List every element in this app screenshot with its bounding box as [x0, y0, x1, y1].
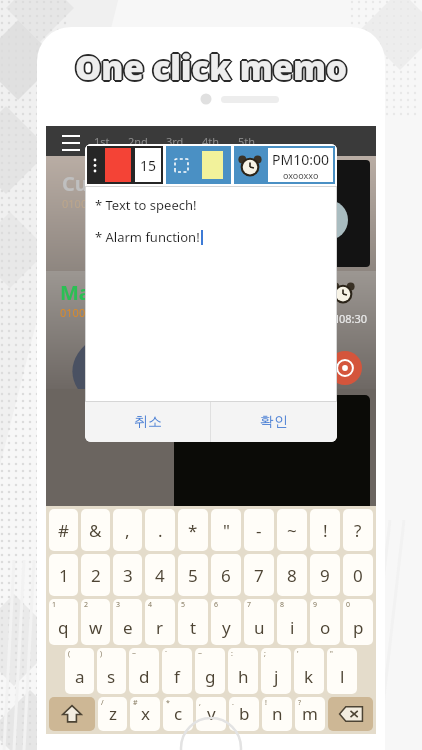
button[interactable]: #: [130, 697, 160, 731]
button[interactable]: #: [49, 509, 78, 551]
button[interactable]: 7: [244, 554, 274, 596]
button[interactable]: Alarm time: [234, 146, 335, 184]
staticText: ?: [354, 519, 362, 542]
button[interactable]: !: [262, 697, 292, 731]
staticText: 8: [287, 564, 297, 587]
staticText: .: [232, 698, 234, 708]
button[interactable]: Highlight color: [166, 146, 231, 184]
staticText: u: [254, 616, 265, 639]
button[interactable]: ;: [261, 648, 291, 694]
staticText: Recording sample.: [184, 405, 298, 423]
button[interactable]: 취소: [85, 402, 210, 442]
staticText: ,: [125, 519, 130, 542]
button[interactable]: 3: [113, 554, 142, 596]
button[interactable]: 9: [310, 599, 340, 645]
staticText: oxooxxo: [283, 169, 319, 181]
button[interactable]: 5: [178, 599, 208, 645]
button[interactable]: ?: [295, 697, 325, 731]
staticText: :: [231, 649, 233, 659]
button[interactable]: ~: [129, 648, 159, 694]
button[interactable]: 8: [277, 554, 307, 596]
button[interactable]: `: [162, 648, 192, 694]
button[interactable]: 2nd: [128, 134, 148, 149]
button[interactable]: 3: [113, 599, 142, 645]
staticText: * Text to speech!: [95, 196, 197, 214]
button[interactable]: ~: [277, 509, 307, 551]
staticText: 9: [320, 564, 330, 587]
button[interactable]: 3rd: [166, 134, 184, 149]
button[interactable]: 0: [343, 554, 373, 596]
staticText: ): [100, 649, 103, 659]
staticText: * Alarm function!: [95, 228, 200, 246]
button[interactable]: 2: [81, 599, 110, 645]
button[interactable]: 7: [244, 599, 274, 645]
button[interactable]: 2: [81, 554, 110, 596]
button[interactable]: -: [244, 509, 274, 551]
button[interactable]: 6: [211, 554, 241, 596]
button[interactable]: 6: [211, 599, 241, 645]
button[interactable]: .: [229, 697, 259, 731]
button[interactable]: ~: [195, 648, 225, 694]
staticText: ~: [287, 519, 297, 542]
button[interactable]: Backspace: [328, 697, 373, 731]
button[interactable]: /: [98, 697, 127, 731]
staticText: 6: [221, 564, 231, 587]
staticText: One click memo: [73, 45, 346, 90]
button[interactable]: 1st: [94, 134, 110, 149]
other: More options: [87, 146, 103, 184]
staticText: x: [141, 702, 150, 725]
staticText: v: [207, 702, 216, 725]
button[interactable]: 4: [145, 554, 175, 596]
button[interactable]: More options: [87, 146, 163, 184]
button[interactable]: :: [228, 648, 258, 694]
staticText: i: [290, 616, 295, 639]
button[interactable]: Pause: [308, 200, 348, 240]
staticText: 5: [181, 600, 186, 610]
button[interactable]: ,: [113, 509, 142, 551]
button[interactable]: 8: [277, 599, 307, 645]
button[interactable]: 확인: [211, 402, 337, 442]
button[interactable]: &: [81, 509, 110, 551]
button[interactable]: 5: [178, 554, 208, 596]
button[interactable]: ": [211, 509, 241, 551]
button[interactable]: 9: [310, 554, 340, 596]
button[interactable]: Shift: [49, 697, 95, 731]
button[interactable]: ): [97, 648, 126, 694]
staticText: ": [223, 519, 230, 542]
button[interactable]: ': [294, 648, 324, 694]
button[interactable]: 5th: [238, 134, 256, 149]
button[interactable]: Call: [328, 351, 362, 385]
staticText: 9: [313, 600, 318, 610]
button[interactable]: 4th: [202, 134, 220, 149]
button[interactable]: Menu: [58, 128, 84, 154]
staticText: 2nd: [128, 134, 148, 149]
staticText: 8: [280, 600, 285, 610]
button[interactable]: ": [327, 648, 357, 694]
staticText: 3: [116, 600, 121, 610]
button[interactable]: 1: [49, 599, 78, 645]
button[interactable]: !: [310, 509, 340, 551]
button[interactable]: (: [65, 648, 94, 694]
staticText: c: [174, 702, 183, 725]
staticText: 확인: [260, 413, 288, 431]
staticText: 3rd: [166, 134, 184, 149]
staticText: One click memo: [75, 43, 348, 88]
button[interactable]: *: [163, 697, 193, 731]
button[interactable]: ?: [343, 509, 373, 551]
staticText: o: [320, 616, 331, 639]
button[interactable]: 0: [343, 599, 373, 645]
staticText: PM10:00: [272, 150, 329, 169]
other: Shift: [61, 703, 83, 725]
button[interactable]: *: [178, 509, 208, 551]
button[interactable]: 1: [49, 554, 78, 596]
staticText: One click memo: [74, 44, 347, 89]
staticText: Man: [60, 279, 104, 306]
staticText: One click memo: [76, 44, 349, 89]
staticText: d.: [256, 166, 266, 181]
button[interactable]: ,: [196, 697, 226, 731]
staticText: b: [239, 702, 250, 725]
staticText: 15: [140, 156, 157, 175]
button[interactable]: .: [145, 509, 175, 551]
button[interactable]: 4: [145, 599, 175, 645]
staticText: ?: [298, 698, 302, 708]
